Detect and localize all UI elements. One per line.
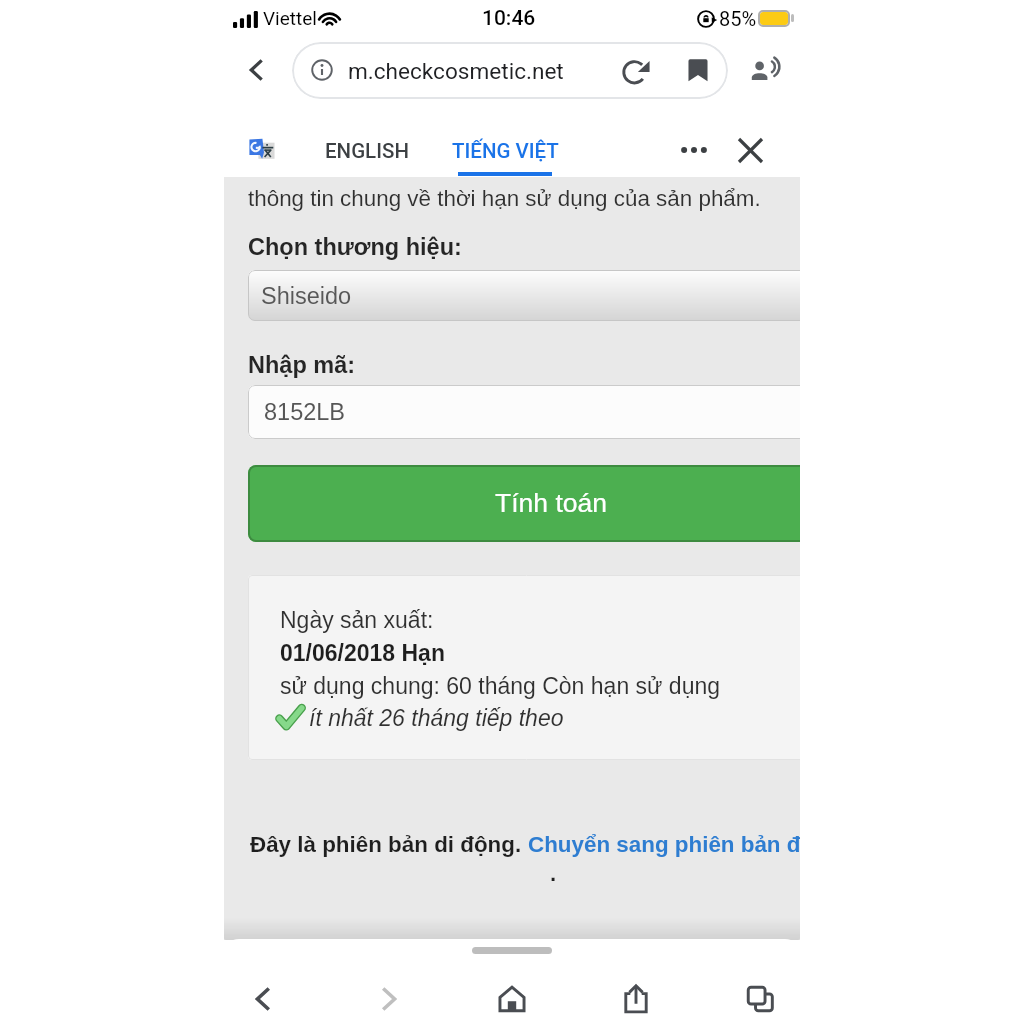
button[interactable]: Reload bbox=[618, 53, 654, 89]
staticText: TIẾNG VIỆT bbox=[452, 139, 559, 163]
staticText: 85% bbox=[719, 7, 757, 30]
staticText: Shiseido bbox=[261, 283, 352, 309]
staticText: . bbox=[550, 861, 557, 886]
button[interactable]: Google Translate bbox=[240, 128, 284, 172]
button[interactable]: Bookmark bbox=[679, 51, 717, 89]
button[interactable]: 8152LB bbox=[248, 385, 800, 439]
button[interactable]: Shiseido bbox=[248, 270, 800, 321]
button[interactable]: Tabs bbox=[732, 971, 788, 1024]
staticText: Viettel bbox=[263, 7, 317, 29]
button[interactable]: Close bbox=[727, 127, 773, 173]
button[interactable]: Back bbox=[236, 971, 292, 1024]
staticText: Chuyển sang phiên bản đầy đủ bbox=[528, 832, 800, 857]
staticText: thông tin chung về thời hạn sử dụng của … bbox=[248, 186, 761, 211]
button[interactable]: More options bbox=[671, 127, 717, 173]
button[interactable]: Voice search bbox=[742, 48, 788, 94]
staticText: ENGLISH bbox=[325, 139, 409, 163]
staticText: ít nhất 26 tháng tiếp theo bbox=[309, 705, 564, 731]
button[interactable]: TIẾNG VIỆT bbox=[444, 122, 566, 180]
staticText: 01/06/2018 Hạn bbox=[280, 640, 445, 666]
staticText: Ngày sản xuất: bbox=[280, 607, 434, 633]
staticText: Nhập mã: bbox=[248, 352, 356, 378]
button[interactable]: ENGLISH bbox=[308, 122, 426, 180]
button[interactable]: Home bbox=[484, 971, 540, 1024]
button[interactable]: m.checkcosmetic.net bbox=[292, 42, 728, 99]
button[interactable]: Chuyển sang phiên bản đầy đủ bbox=[528, 832, 800, 857]
staticText: Đây là phiên bản di động. bbox=[250, 832, 528, 857]
button[interactable]: Back bbox=[234, 47, 280, 93]
staticText: Tính toán bbox=[495, 488, 607, 518]
button[interactable]: Share bbox=[608, 971, 664, 1024]
staticText: sử dụng chung: 60 tháng Còn hạn sử dụng bbox=[280, 673, 721, 699]
button[interactable]: Tính toán bbox=[248, 465, 800, 542]
staticText: 10:46 bbox=[482, 6, 536, 31]
button[interactable]: Forward bbox=[360, 971, 416, 1024]
staticText: Chọn thương hiệu: bbox=[248, 234, 462, 260]
staticText: m.checkcosmetic.net bbox=[348, 58, 564, 84]
staticText: 8152LB bbox=[264, 399, 346, 425]
